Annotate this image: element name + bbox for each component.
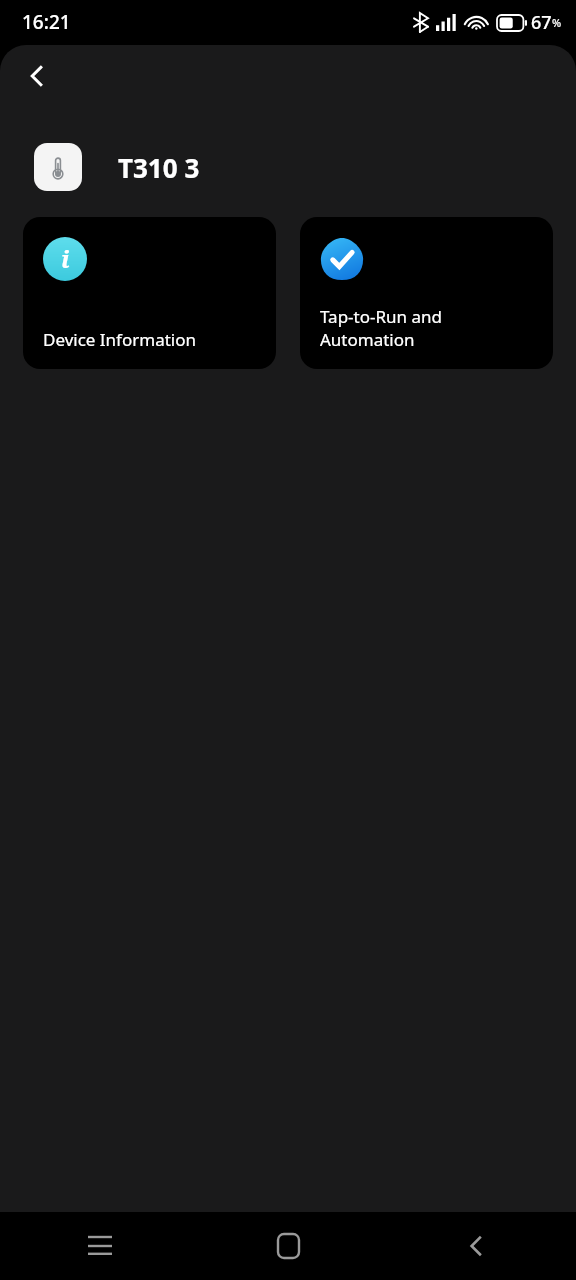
button[interactable]: Tap-to-Run and (300, 217, 553, 369)
button[interactable]: Recent apps (70, 1216, 130, 1276)
staticText: 67 (531, 10, 552, 35)
staticText: Device Information (43, 328, 197, 351)
button[interactable]: Back (446, 1216, 506, 1276)
button[interactable]: Home (258, 1216, 318, 1276)
staticText: Automation (320, 328, 415, 351)
staticText: T310 3 (118, 150, 200, 185)
button[interactable]: Back (12, 51, 62, 101)
staticText: % (552, 15, 562, 30)
staticText: 16:21 (22, 9, 71, 35)
staticText: Tap-to-Run and (320, 305, 442, 328)
staticText: i (61, 242, 70, 275)
button[interactable]: i (23, 217, 276, 369)
